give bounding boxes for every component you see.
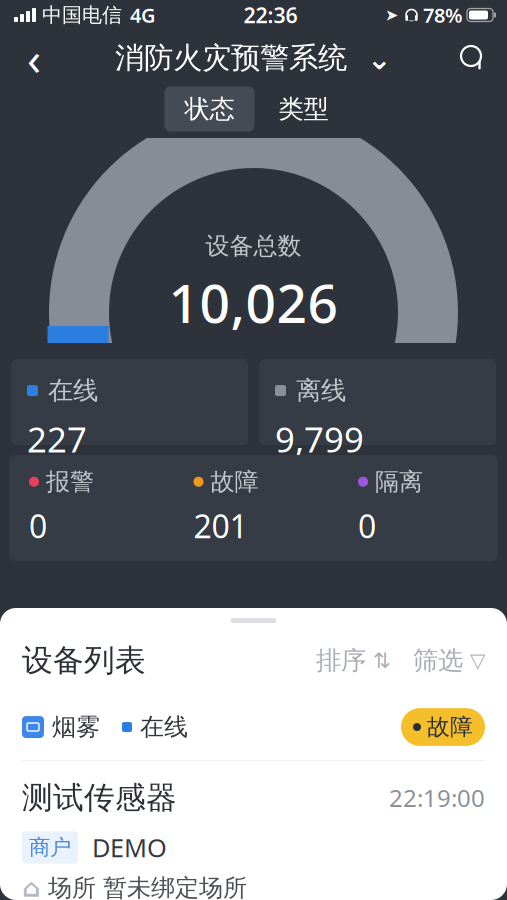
staticText: 类型 xyxy=(278,93,328,124)
staticText: 在线 xyxy=(140,712,188,742)
staticText: 状态 xyxy=(184,93,234,124)
button[interactable]: 故障 xyxy=(193,467,313,547)
staticText: 隔离 xyxy=(375,467,423,496)
staticText: 78% xyxy=(423,2,463,28)
button[interactable]: Search xyxy=(449,34,497,82)
staticText: 烟雾 xyxy=(52,712,100,742)
button[interactable]: 筛选 xyxy=(391,639,485,682)
staticText: 设备总数 xyxy=(205,231,301,261)
staticText: 设备列表 xyxy=(22,642,146,679)
staticText: 0 xyxy=(29,504,47,547)
button[interactable]: 烟雾 xyxy=(0,690,507,900)
staticText: 中国电信 xyxy=(42,3,122,27)
button[interactable]: Back xyxy=(10,34,58,82)
button[interactable]: 状态 xyxy=(164,86,254,131)
staticText: ▽ xyxy=(470,649,485,672)
staticText: 10,026 xyxy=(168,267,338,338)
staticText: ‹ xyxy=(27,28,41,88)
staticText: 9,799 xyxy=(275,416,364,462)
button[interactable]: 排序 xyxy=(316,639,391,682)
staticText: 0 xyxy=(358,504,376,547)
staticText: 22:19:00 xyxy=(389,782,485,814)
staticText: DEMO xyxy=(92,831,167,864)
staticText: 报警 xyxy=(46,467,94,496)
button[interactable]: 类型 xyxy=(264,86,342,131)
staticText: 故障 xyxy=(210,467,258,496)
staticText: 22:36 xyxy=(243,1,297,29)
staticText: 筛选 xyxy=(413,645,463,676)
staticText: ⌂ xyxy=(22,874,40,900)
staticText: 消防火灾预警系统 ⌄ xyxy=(115,40,392,76)
button[interactable]: 在线 xyxy=(11,359,248,445)
button[interactable]: 离线 xyxy=(259,359,496,445)
staticText: 201 xyxy=(193,504,247,547)
staticText: ➤ xyxy=(385,6,398,24)
staticText: 测试传感器 xyxy=(22,779,177,817)
staticText: 4G xyxy=(130,2,156,28)
staticText: 离线 xyxy=(296,375,346,406)
staticText: 排序 xyxy=(316,645,366,676)
staticText: 商户 xyxy=(29,834,71,860)
staticText: ⇅ xyxy=(373,648,391,673)
button[interactable]: 隔离 xyxy=(358,467,478,547)
staticText: 在线 xyxy=(48,375,98,406)
button[interactable]: 报警 xyxy=(29,467,149,547)
staticText: 故障 xyxy=(427,713,473,741)
staticText: 场所 暂未绑定场所 xyxy=(48,873,247,900)
staticText: 227 xyxy=(27,416,87,462)
